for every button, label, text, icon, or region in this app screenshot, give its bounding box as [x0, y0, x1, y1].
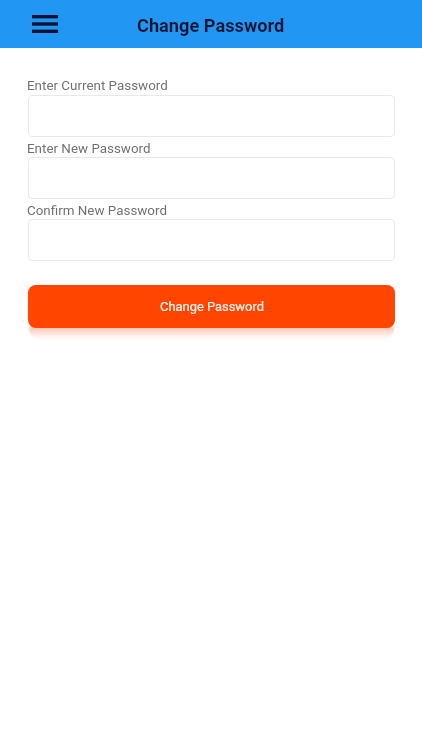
- button[interactable]: Open navigation menu: [21, 0, 69, 48]
- button[interactable]: [28, 157, 395, 199]
- button[interactable]: [28, 219, 395, 261]
- button[interactable]: Change Password: [28, 285, 395, 328]
- staticText: Confirm New Password: [27, 203, 167, 219]
- staticText: Change Password: [160, 299, 264, 314]
- staticText: Enter Current Password: [27, 78, 168, 94]
- staticText: Enter New Password: [27, 141, 151, 157]
- staticText: Change Password: [137, 15, 285, 36]
- button[interactable]: [28, 95, 395, 137]
